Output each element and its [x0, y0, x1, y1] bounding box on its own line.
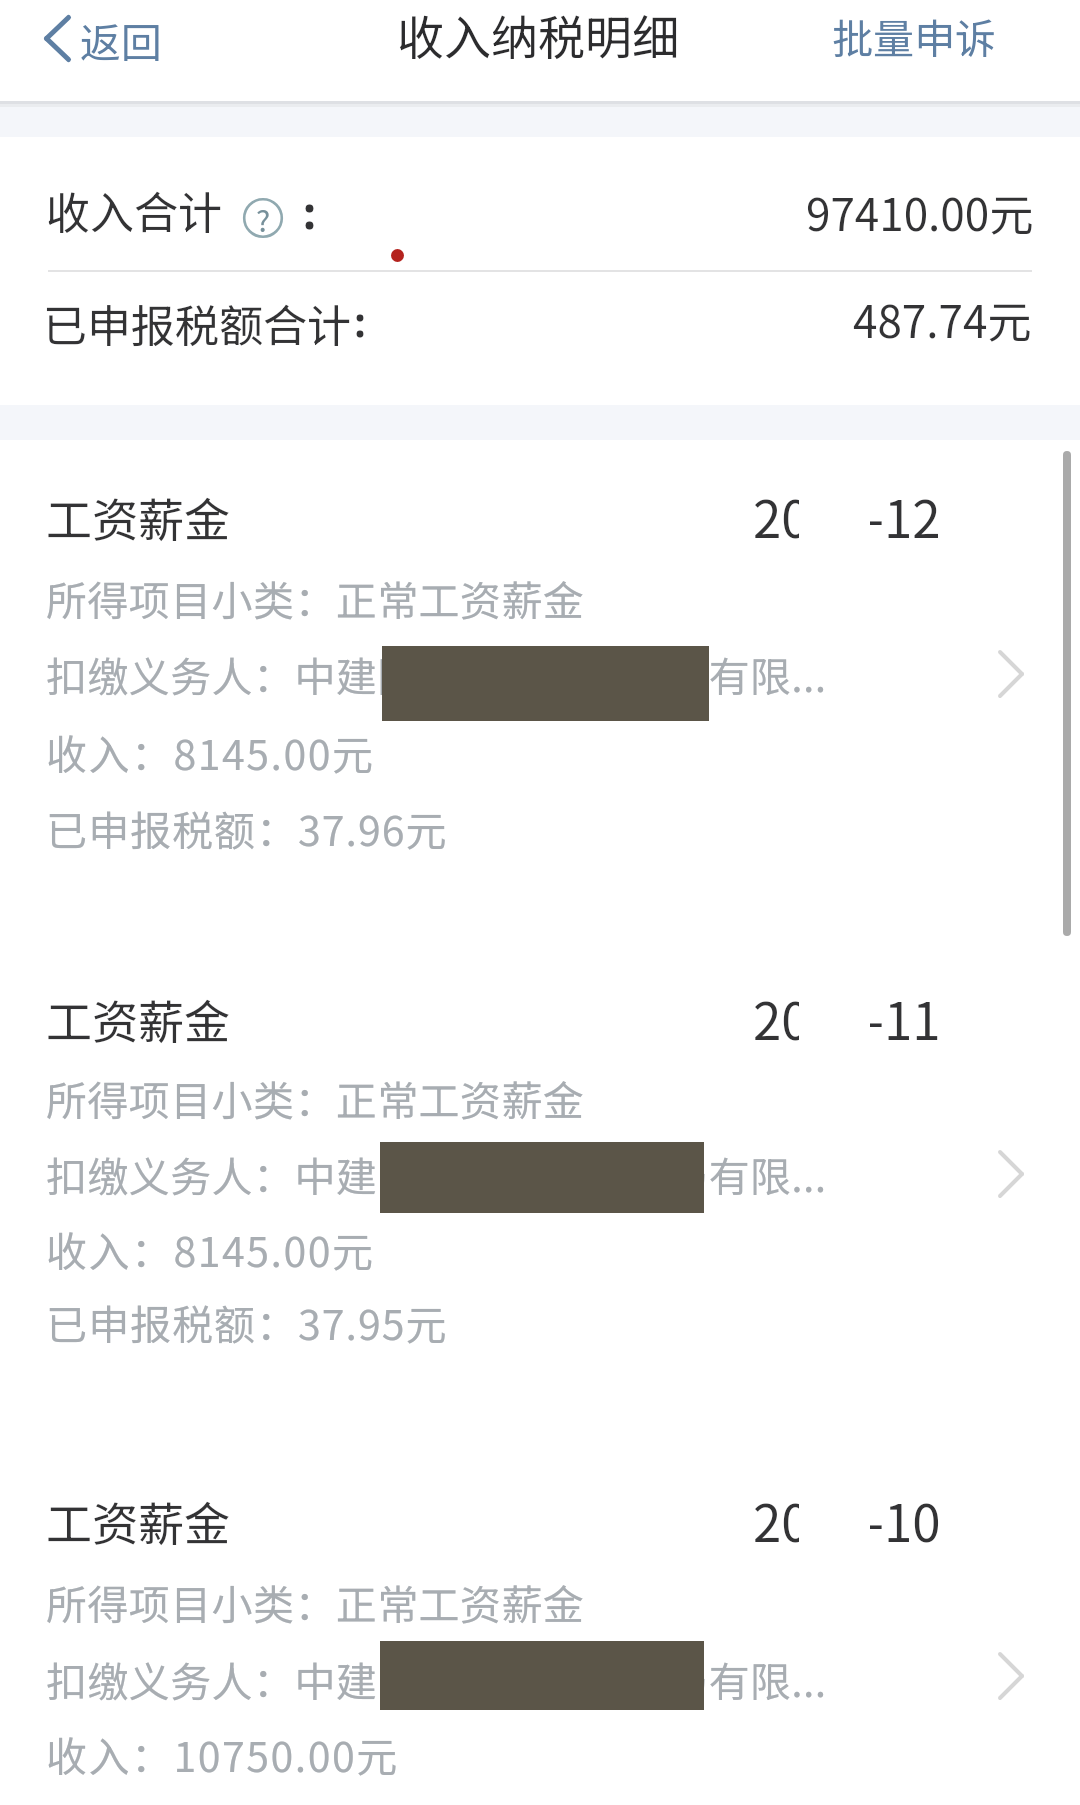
staticText: 扣缴义务人：中建国际建设集团六局有限...: [46, 1144, 827, 1203]
staticText: 487.74元: [853, 287, 1032, 351]
staticText: 收入：8145.00元: [46, 1219, 375, 1278]
staticText: 工资薪金: [46, 986, 230, 1053]
staticText: 扣缴义务人：中建国际建设集团六局有限...: [46, 1649, 827, 1708]
button[interactable]: 工资薪金: [0, 448, 1080, 878]
staticText: 2018-12: [753, 479, 941, 553]
staticText: 已申报税额合计: [43, 291, 351, 355]
staticText: ?: [256, 197, 271, 237]
button[interactable]: 工资薪金: [0, 950, 1080, 1380]
staticText: 批量申诉: [832, 6, 996, 65]
staticText: 收入合计: [46, 178, 222, 242]
staticText: 已申报税额：37.95元: [46, 1292, 448, 1351]
button[interactable]: 工资薪金: [0, 1452, 1080, 1802]
staticText: 2018-11: [753, 981, 941, 1055]
staticText: 工资薪金: [46, 484, 230, 551]
other: 查看详情: [967, 1632, 1055, 1720]
staticText: 工资薪金: [46, 1488, 230, 1555]
staticText: 收入：8145.00元: [46, 722, 375, 781]
button[interactable]: 已申报税额合计: [0, 272, 1080, 405]
other: 查看详情: [967, 630, 1055, 718]
button[interactable]: 批量申诉: [810, 4, 1030, 98]
button[interactable]: 收入合计说明: [243, 198, 283, 238]
staticText: 所得项目小类：正常工资薪金: [46, 568, 585, 627]
button[interactable]: 返回: [20, 4, 190, 98]
staticText: 收入：10750.00元: [46, 1724, 399, 1783]
staticText: 收入纳税明细: [397, 0, 679, 68]
staticText: 97410.00元: [806, 180, 1034, 244]
button[interactable]: 收入合计: [0, 137, 1080, 270]
staticText: 已申报税额：37.96元: [46, 798, 448, 857]
staticText: 返回: [80, 10, 162, 69]
staticText: 扣缴义务人：中建国际建设集团六局有限...: [46, 644, 827, 703]
staticText: 2018-10: [753, 1483, 941, 1557]
other: 查看详情: [967, 1130, 1055, 1218]
staticText: 所得项目小类：正常工资薪金: [46, 1572, 585, 1631]
staticText: 所得项目小类：正常工资薪金: [46, 1068, 585, 1127]
